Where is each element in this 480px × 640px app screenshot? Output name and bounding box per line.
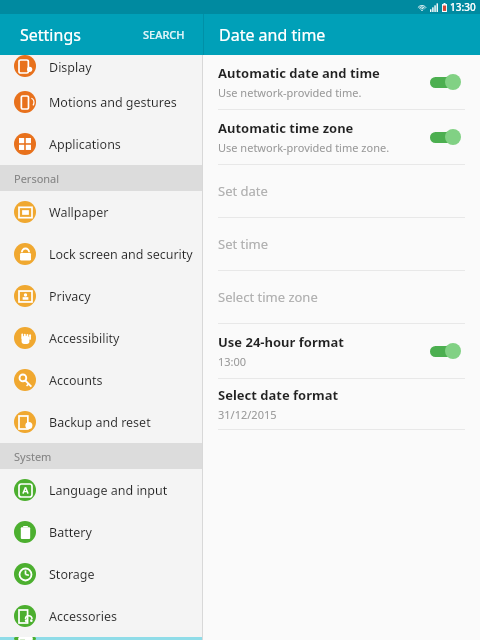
staticText: 31/12/2015 bbox=[218, 407, 277, 422]
staticText: Storage bbox=[49, 566, 95, 583]
button[interactable]: Lock screen and security bbox=[0, 233, 202, 275]
staticText: System bbox=[14, 449, 52, 464]
staticText: Use 24-hour format bbox=[218, 333, 344, 351]
button[interactable]: Select time zone bbox=[218, 271, 480, 323]
staticText: Backup and reset bbox=[49, 414, 151, 431]
staticText: Battery bbox=[49, 524, 92, 541]
button[interactable]: Accessibility bbox=[0, 317, 202, 359]
button[interactable]: Motions and gestures bbox=[0, 81, 202, 123]
staticText: Settings bbox=[20, 24, 81, 46]
staticText: Motions and gestures bbox=[49, 94, 177, 111]
button[interactable]: Use 24-hour format bbox=[218, 324, 480, 378]
button[interactable]: Storage bbox=[0, 553, 202, 595]
button[interactable]: Set time bbox=[218, 218, 480, 270]
staticText: Accessories bbox=[49, 608, 118, 625]
button[interactable]: SEARCH bbox=[133, 19, 195, 50]
staticText: Personal bbox=[14, 171, 60, 186]
staticText: Set time bbox=[218, 235, 269, 253]
button[interactable]: Automatic date and time bbox=[218, 55, 480, 109]
staticText: Lock screen and security bbox=[49, 246, 193, 263]
staticText: Set date bbox=[218, 182, 268, 200]
staticText: 13:30 bbox=[450, 0, 476, 14]
button[interactable]: Accounts bbox=[0, 359, 202, 401]
button[interactable]: Display bbox=[0, 55, 202, 81]
staticText: Automatic date and time bbox=[218, 64, 380, 82]
button[interactable]: Language and input bbox=[0, 469, 202, 511]
staticText: Privacy bbox=[49, 288, 91, 305]
button[interactable]: Select date format bbox=[218, 379, 480, 429]
staticText: Date and time bbox=[219, 24, 326, 46]
staticText: Use network-provided time. bbox=[218, 85, 362, 100]
staticText: Wallpaper bbox=[49, 204, 109, 221]
staticText: Applications bbox=[49, 136, 121, 153]
staticText: Language and input bbox=[49, 482, 168, 499]
staticText: 13:00 bbox=[218, 354, 247, 369]
button[interactable]: Set date bbox=[218, 165, 480, 217]
staticText: Select time zone bbox=[218, 288, 318, 306]
staticText: Accessibility bbox=[49, 330, 120, 347]
staticText: SEARCH bbox=[143, 27, 185, 42]
button[interactable]: Privacy bbox=[0, 275, 202, 317]
button[interactable]: Accessories bbox=[0, 595, 202, 637]
button[interactable]: Wallpaper bbox=[0, 191, 202, 233]
staticText: Display bbox=[49, 59, 92, 76]
staticText: Select date format bbox=[218, 386, 339, 404]
button[interactable]: Applications bbox=[0, 123, 202, 165]
staticText: Accounts bbox=[49, 372, 103, 389]
button[interactable]: Automatic time zone bbox=[218, 110, 480, 164]
staticText: Automatic time zone bbox=[218, 119, 354, 137]
staticText: Use network-provided time zone. bbox=[218, 140, 390, 155]
button[interactable]: Battery bbox=[0, 511, 202, 553]
button[interactable]: Backup and reset bbox=[0, 401, 202, 443]
button[interactable]: Date and time bbox=[0, 637, 202, 640]
